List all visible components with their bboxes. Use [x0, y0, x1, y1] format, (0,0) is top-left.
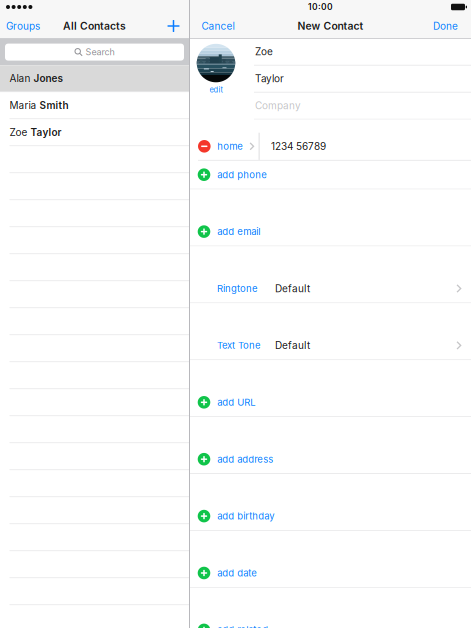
- staticText: New Contact: [297, 20, 363, 32]
- staticText: Default: [275, 282, 310, 295]
- button[interactable]: Maria: [0, 92, 189, 119]
- button[interactable]: add birthday: [190, 502, 471, 530]
- staticText: Jones: [33, 72, 62, 84]
- staticText: 1234 56789: [271, 140, 326, 152]
- staticText: add phone: [217, 169, 267, 180]
- button[interactable]: Zoe: [190, 39, 471, 66]
- button[interactable]: Edit photo: [190, 42, 242, 96]
- button[interactable]: add phone: [190, 161, 471, 189]
- staticText: Alan: [9, 72, 33, 84]
- staticText: Taylor: [255, 73, 284, 85]
- staticText: add related: [217, 624, 268, 628]
- staticText: Done: [433, 20, 458, 32]
- staticText: add birthday: [217, 510, 274, 522]
- button[interactable]: Add contact: [158, 14, 189, 38]
- staticText: Zoe: [9, 126, 30, 138]
- button[interactable]: home: [190, 133, 471, 161]
- staticText: Search: [85, 47, 114, 58]
- staticText: edit: [209, 85, 222, 94]
- button[interactable]: Alan: [0, 65, 189, 92]
- staticText: Groups: [6, 20, 40, 32]
- staticText: add email: [217, 226, 260, 237]
- button[interactable]: Ringtone: [190, 274, 471, 302]
- staticText: 10:00: [308, 2, 333, 12]
- button[interactable]: Text Tone: [190, 331, 471, 359]
- button[interactable]: Cancel: [190, 14, 240, 38]
- button[interactable]: add URL: [190, 388, 471, 416]
- staticText: Zoe: [255, 46, 273, 58]
- button[interactable]: Groups: [0, 14, 46, 38]
- staticText: Text Tone: [217, 340, 261, 351]
- staticText: Taylor: [30, 126, 61, 138]
- staticText: Company: [255, 100, 301, 112]
- button[interactable]: Company: [190, 93, 471, 120]
- staticText: add date: [217, 567, 257, 579]
- button[interactable]: add address: [190, 445, 471, 473]
- staticText: add URL: [217, 397, 255, 408]
- staticText: Ringtone: [217, 283, 258, 294]
- staticText: add address: [217, 453, 273, 465]
- staticText: All Contacts: [63, 20, 126, 32]
- button[interactable]: Done: [427, 14, 471, 38]
- staticText: Cancel: [201, 20, 234, 32]
- staticText: Maria: [9, 99, 39, 111]
- staticText: Smith: [39, 99, 68, 111]
- staticText: Default: [275, 339, 310, 351]
- button[interactable]: Taylor: [190, 66, 471, 93]
- button[interactable]: add email: [190, 218, 471, 246]
- button[interactable]: add related: [190, 616, 471, 628]
- button[interactable]: add date: [190, 559, 471, 587]
- staticText: home: [217, 141, 243, 152]
- button[interactable]: Zoe: [0, 119, 189, 146]
